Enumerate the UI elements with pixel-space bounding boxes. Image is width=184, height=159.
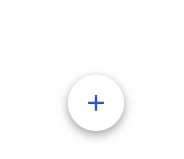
button[interactable]: Add <box>68 75 124 131</box>
